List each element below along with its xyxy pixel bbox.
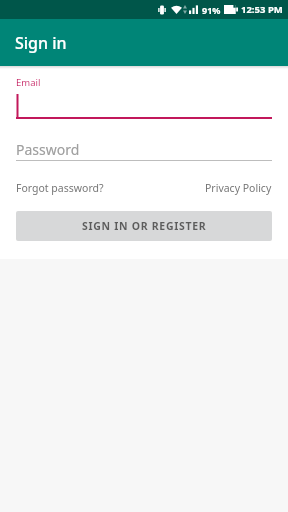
staticText: SIGN IN OR REGISTER bbox=[82, 219, 207, 233]
button[interactable]: Password input bbox=[16, 138, 272, 160]
staticText: Email bbox=[16, 76, 41, 89]
button[interactable]: Privacy Policy bbox=[205, 181, 272, 195]
staticText: Password bbox=[16, 140, 80, 159]
staticText: Privacy Policy bbox=[205, 181, 272, 195]
staticText: 91% bbox=[202, 4, 221, 16]
button[interactable]: Email input bbox=[16, 94, 272, 117]
staticText: 12:53 PM bbox=[241, 3, 283, 16]
button[interactable]: SIGN IN OR REGISTER bbox=[16, 211, 272, 241]
button[interactable]: Forgot password? bbox=[16, 181, 104, 195]
staticText: Sign in bbox=[15, 32, 67, 54]
staticText: Forgot password? bbox=[16, 181, 104, 195]
